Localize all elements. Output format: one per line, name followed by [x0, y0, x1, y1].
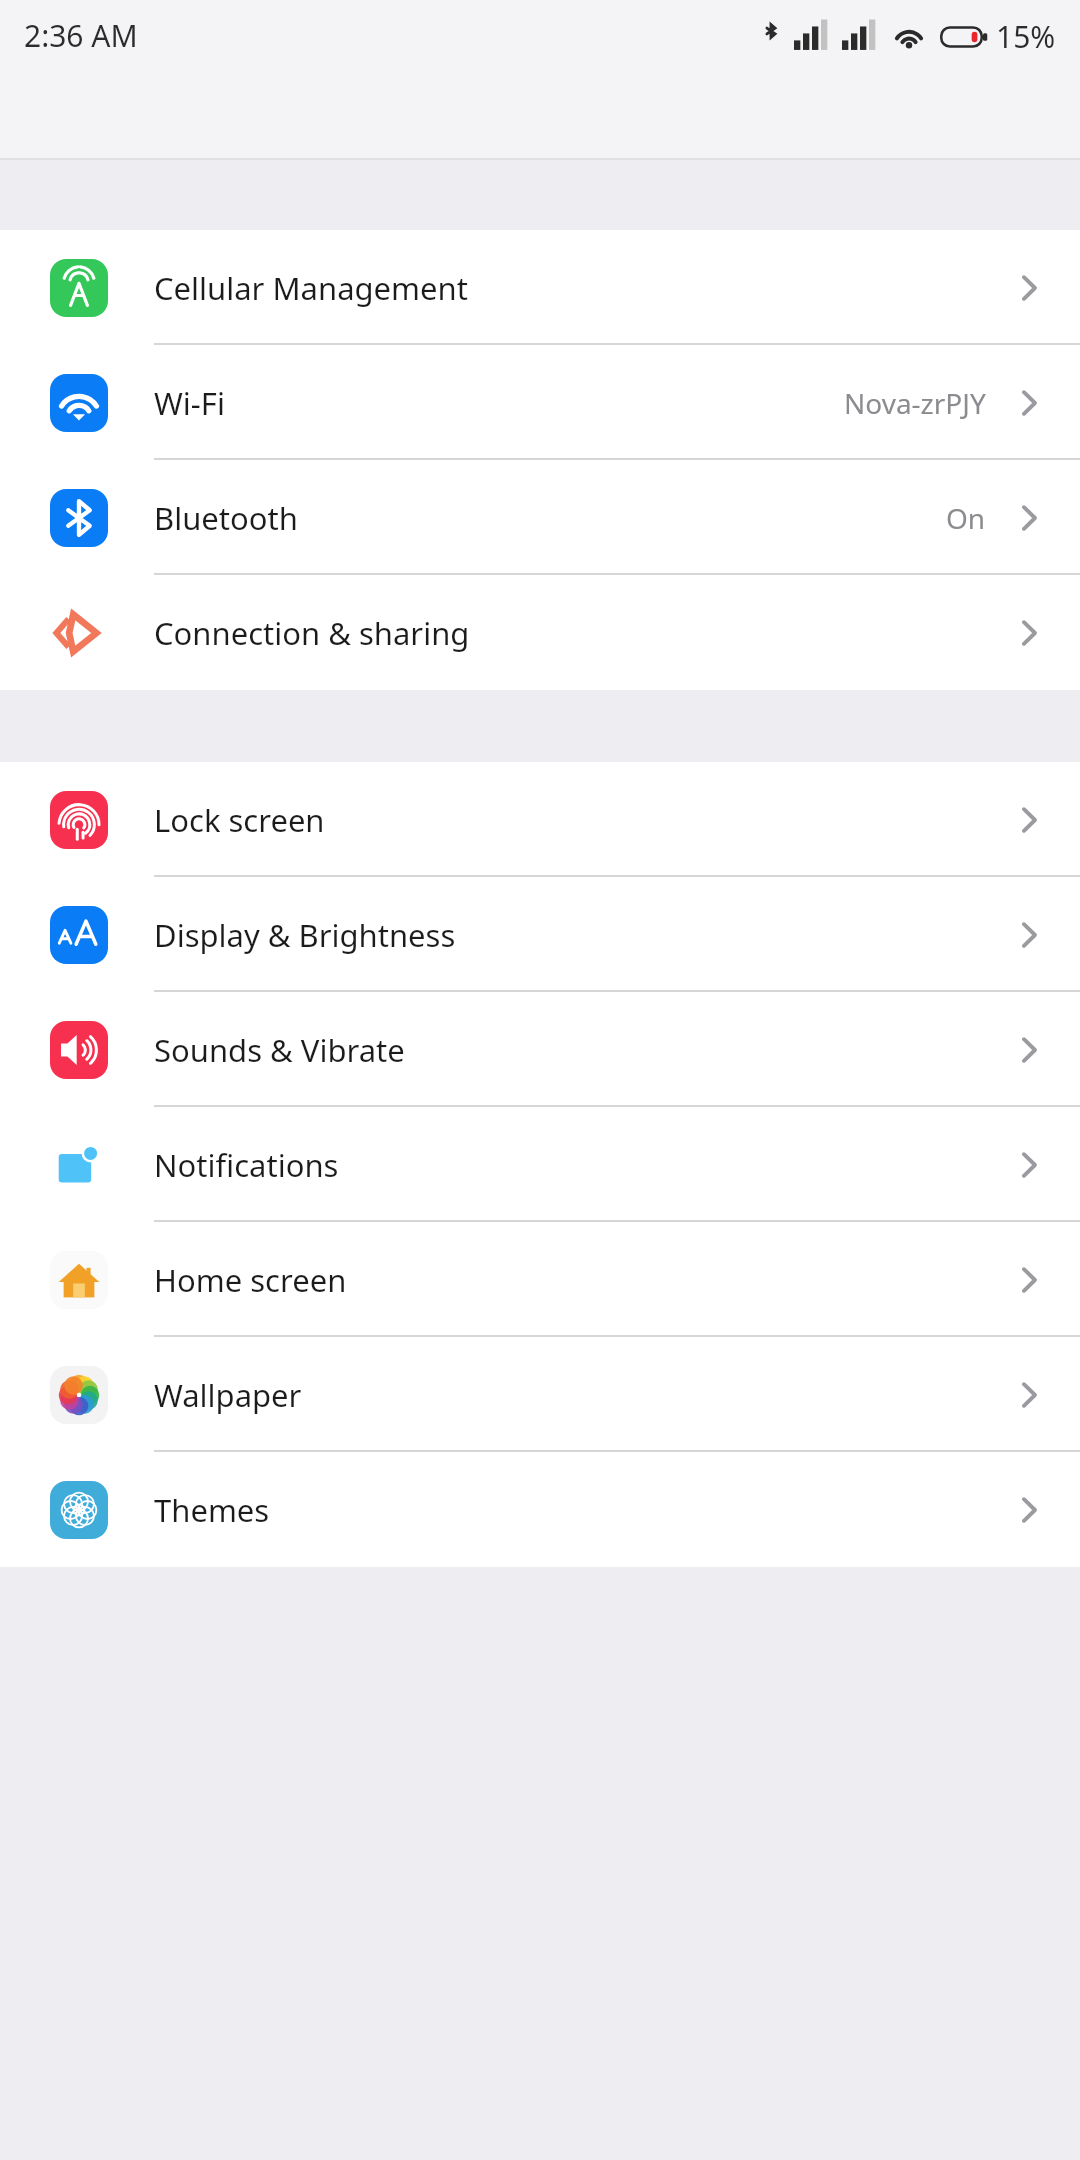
staticText: 2:36 AM [24, 15, 138, 56]
staticText: Lock screen [154, 799, 1014, 841]
button[interactable]: Display & Brightness [0, 877, 1080, 992]
staticText: Nova-zrPJY [844, 384, 986, 422]
staticText: Connection & sharing [154, 612, 1014, 654]
staticText: Wi-Fi [154, 382, 844, 424]
staticText: Themes [154, 1489, 1014, 1531]
button[interactable]: Lock screen [0, 762, 1080, 877]
staticText: Display & Brightness [154, 914, 1014, 956]
staticText: Bluetooth [154, 497, 946, 539]
button[interactable]: Wi-Fi [0, 345, 1080, 460]
staticText: Sounds & Vibrate [154, 1029, 1014, 1071]
button[interactable]: Sounds & Vibrate [0, 992, 1080, 1107]
staticText: On [946, 499, 986, 537]
button[interactable]: Cellular Management [0, 230, 1080, 345]
button[interactable]: Connection & sharing [0, 575, 1080, 690]
staticText: Cellular Management [154, 267, 1014, 309]
button[interactable]: Notifications [0, 1107, 1080, 1222]
staticText: Home screen [154, 1259, 1014, 1301]
staticText: Wallpaper [154, 1374, 1014, 1416]
button[interactable]: Wallpaper [0, 1337, 1080, 1452]
button[interactable]: Themes [0, 1452, 1080, 1567]
staticText: 15% [996, 16, 1056, 57]
button[interactable]: Home screen [0, 1222, 1080, 1337]
staticText: Notifications [154, 1144, 1014, 1186]
button[interactable]: Bluetooth [0, 460, 1080, 575]
